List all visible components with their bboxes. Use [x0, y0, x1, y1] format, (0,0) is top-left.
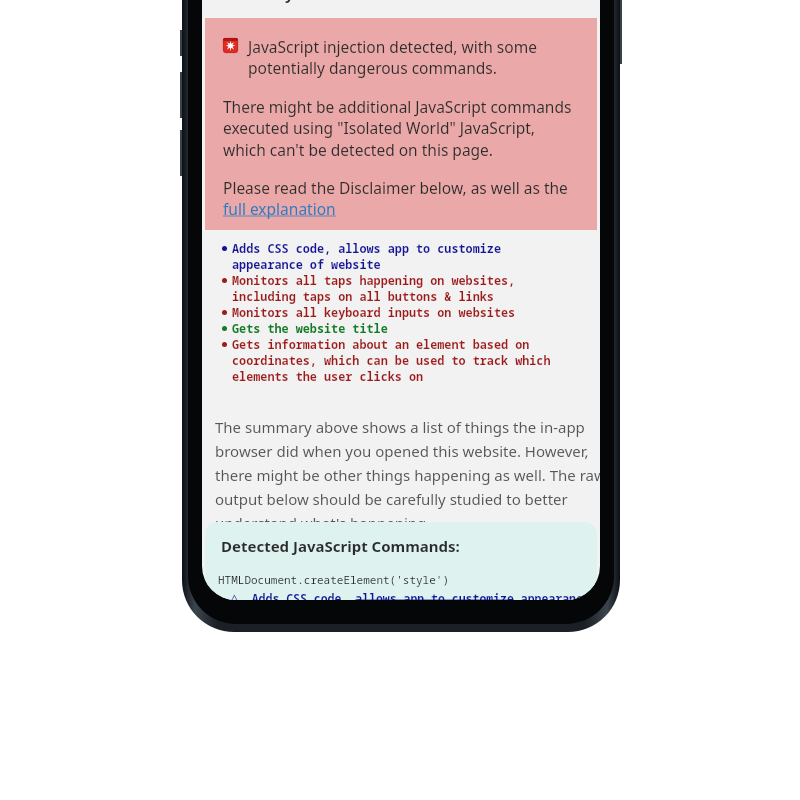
staticText: Gets information about an element based …	[232, 336, 551, 384]
staticText: Please read the Disclaimer below, as wel…	[223, 177, 568, 198]
staticText: HTMLDocument.createElement('style')	[218, 572, 449, 587]
button[interactable]: full explanation	[223, 198, 336, 219]
staticText: There might be additional JavaScript com…	[223, 96, 572, 161]
other: Danger	[223, 38, 238, 53]
staticText: ^ Adds CSS code, allows app to customize…	[231, 591, 597, 600]
staticText: Adds CSS code, allows app to customize a…	[232, 240, 501, 272]
staticText: Monitors all keyboard inputs on websites	[232, 304, 516, 320]
staticText: Monitors all taps happening on websites,…	[232, 272, 516, 304]
staticText: The summary above shows a list of things…	[215, 417, 600, 533]
staticText: JavaScript injection detected, with some…	[248, 36, 537, 79]
staticText: Detected JavaScript Commands:	[221, 536, 460, 556]
staticText: Gets the website title	[232, 320, 388, 336]
staticText: Summary:	[222, 0, 298, 4]
staticText: full explanation	[223, 198, 336, 219]
